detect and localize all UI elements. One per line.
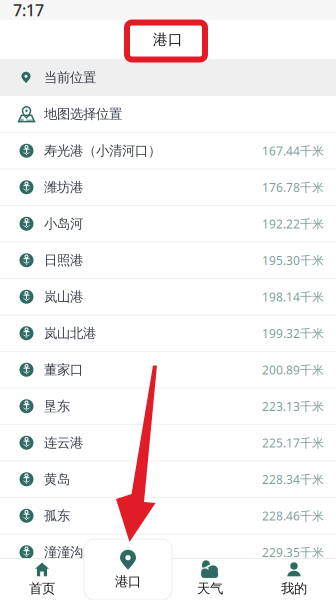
staticText: 岚山港 (44, 289, 83, 305)
staticText: 167.44千米 (262, 143, 324, 159)
button[interactable]: 岚山港 (0, 279, 336, 315)
staticText: 当前位置 (44, 69, 96, 86)
staticText: 黄岛 (44, 471, 70, 487)
button[interactable]: 首页 (0, 558, 84, 600)
staticText: 229.35千米 (262, 544, 324, 560)
staticText: 天气 (197, 580, 223, 597)
staticText: 孤东 (44, 508, 70, 524)
staticText: 225.17千米 (262, 435, 324, 451)
staticText: 176.78千米 (262, 179, 324, 195)
button[interactable]: 董家口 (0, 352, 336, 388)
staticText: 地图选择位置 (44, 106, 122, 122)
button[interactable]: 潼潼沟 (0, 534, 336, 571)
staticText: 192.22千米 (262, 216, 324, 232)
button[interactable]: 当前位置 (0, 59, 336, 96)
staticText: 董家口 (44, 362, 83, 378)
staticText: 200.89千米 (262, 362, 324, 378)
staticText: 223.13千米 (262, 398, 324, 414)
button[interactable]: 垦东 (0, 388, 336, 425)
staticText: 首页 (29, 580, 55, 597)
button[interactable]: 孤东 (0, 498, 336, 534)
staticText: 岚山北港 (44, 325, 96, 341)
button[interactable]: 小岛河 (0, 206, 336, 242)
button[interactable]: 连云港 (0, 425, 336, 461)
staticText: 寿光港（小清河口） (44, 143, 161, 159)
button[interactable]: 岚山北港 (0, 315, 336, 352)
staticText: 228.34千米 (262, 471, 324, 487)
staticText: 228.46千米 (262, 508, 324, 524)
button[interactable]: 黄岛 (0, 461, 336, 498)
button[interactable]: 潍坊港 (0, 169, 336, 206)
staticText: 潼潼沟 (44, 544, 83, 560)
staticText: 我的 (281, 580, 307, 597)
staticText: 199.32千米 (262, 325, 324, 341)
button[interactable]: 港口 (84, 539, 172, 600)
button[interactable]: 我的 (252, 558, 336, 600)
staticText: 垦东 (44, 398, 70, 414)
staticText: 连云港 (44, 435, 83, 451)
staticText: 潍坊港 (44, 179, 83, 195)
staticText: 195.30千米 (262, 252, 324, 268)
button[interactable]: 日照港 (0, 242, 336, 279)
staticText: 198.14千米 (262, 289, 324, 305)
staticText: 7:17 (13, 0, 44, 21)
staticText: 小岛河 (44, 216, 83, 232)
button[interactable]: 地图选择位置 (0, 96, 336, 133)
staticText: 港口 (115, 573, 141, 590)
staticText: 港口 (153, 30, 183, 48)
staticText: 日照港 (44, 252, 83, 268)
button[interactable]: 寿光港（小清河口） (0, 133, 336, 169)
button[interactable]: 天气 (168, 558, 252, 600)
